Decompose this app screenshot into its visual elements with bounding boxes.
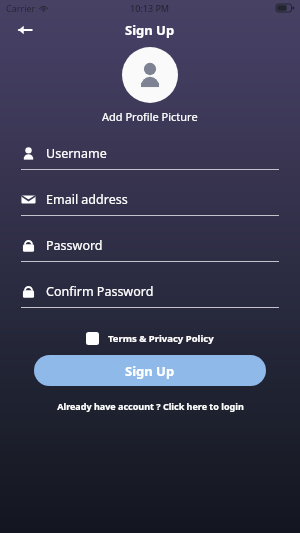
staticText: Password xyxy=(46,237,103,254)
button[interactable]: Sign Up xyxy=(34,355,266,386)
button[interactable]: Email address xyxy=(21,183,279,229)
button[interactable]: Terms & Privacy Policy xyxy=(86,332,214,345)
button[interactable]: Confirm Password xyxy=(21,275,279,321)
button[interactable]: Add Profile Picture xyxy=(122,47,178,103)
staticText: Add Profile Picture xyxy=(102,109,198,124)
button[interactable]: Back xyxy=(10,16,40,44)
staticText: Sign Up xyxy=(125,362,175,380)
staticText: 10:13 PM xyxy=(130,2,170,14)
staticText: Email address xyxy=(46,191,128,208)
staticText: Terms & Privacy Policy xyxy=(108,332,214,345)
button[interactable]: Already have account ? Click here to log… xyxy=(57,400,244,412)
staticText: Sign Up xyxy=(125,21,175,39)
button[interactable]: Username xyxy=(21,137,279,183)
staticText: Already have account ? Click here to log… xyxy=(57,400,244,412)
staticText: Username xyxy=(46,145,107,162)
staticText: Confirm Password xyxy=(46,283,154,300)
button[interactable]: Password xyxy=(21,229,279,275)
staticText: Carrier xyxy=(6,2,36,14)
